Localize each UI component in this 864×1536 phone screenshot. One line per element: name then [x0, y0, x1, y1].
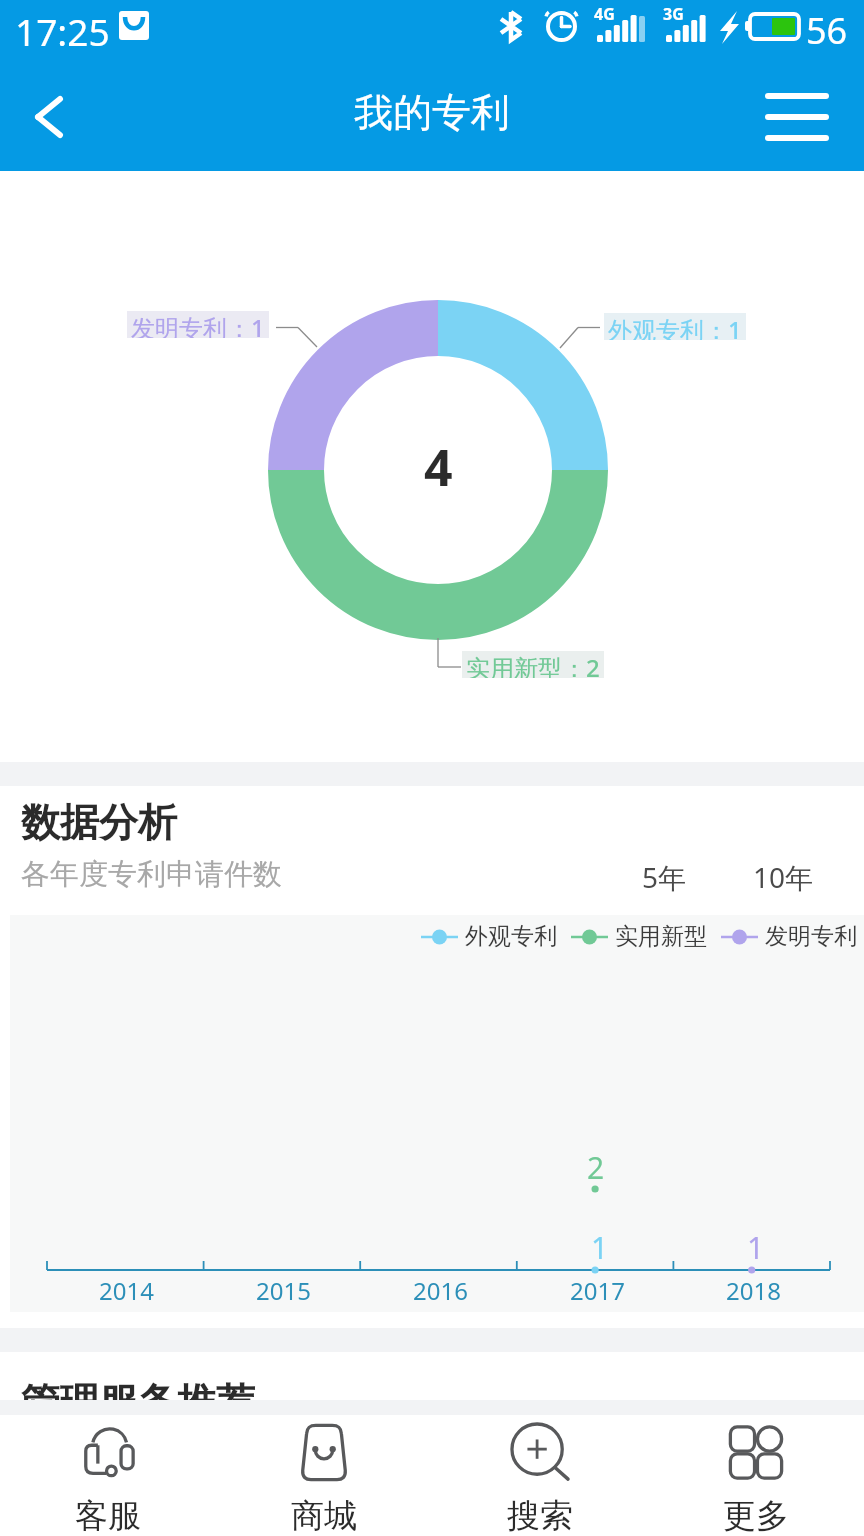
- staticText: 客服: [75, 1495, 141, 1536]
- staticText: 17:25: [15, 6, 110, 56]
- staticText: 3G: [663, 3, 684, 25]
- staticText: 1: [591, 1227, 609, 1268]
- staticText: 管理服务推荐: [21, 1378, 255, 1427]
- staticText: 1: [747, 1227, 765, 1268]
- staticText: 2015: [256, 1274, 311, 1307]
- button[interactable]: Customer service: [0, 1415, 216, 1536]
- button[interactable]: Store: [216, 1415, 432, 1536]
- staticText: 发明专利：1: [131, 311, 265, 338]
- staticText: 数据分析: [21, 798, 177, 847]
- staticText: 更多: [723, 1495, 789, 1536]
- staticText: 外观专利：1: [608, 313, 742, 340]
- other: Search: [511, 1424, 569, 1482]
- button[interactable]: 5年: [634, 852, 695, 902]
- staticText: 发明专利: [765, 922, 857, 951]
- staticText: 实用新型: [615, 922, 707, 951]
- staticText: 实用新型：2: [466, 651, 600, 678]
- button[interactable]: Menu: [729, 62, 864, 171]
- staticText: 商城: [291, 1495, 357, 1536]
- staticText: 2017: [570, 1274, 625, 1307]
- other: Store: [295, 1424, 353, 1482]
- button[interactable]: More: [648, 1415, 864, 1536]
- button[interactable]: Back: [0, 62, 96, 171]
- button[interactable]: Search: [432, 1415, 648, 1536]
- staticText: 10年: [753, 858, 814, 896]
- staticText: 2014: [99, 1274, 154, 1307]
- staticText: 外观专利: [465, 922, 557, 951]
- staticText: 4: [424, 433, 453, 501]
- staticText: 各年度专利申请件数: [21, 856, 282, 893]
- staticText: 2016: [413, 1274, 468, 1307]
- button[interactable]: 10年: [745, 852, 822, 902]
- staticText: 2: [587, 1147, 605, 1188]
- staticText: 56: [806, 6, 848, 55]
- staticText: 2018: [726, 1274, 781, 1307]
- other: Customer service: [79, 1424, 137, 1482]
- staticText: 4G: [594, 3, 615, 25]
- staticText: 5年: [642, 858, 687, 896]
- staticText: 搜索: [507, 1495, 573, 1536]
- other: More: [727, 1424, 785, 1482]
- staticText: 我的专利: [354, 88, 510, 137]
